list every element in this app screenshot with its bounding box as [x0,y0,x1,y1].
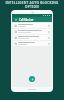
staticText: INTELLIGENT AUTO BLOCKING OPTION [0,1,64,9]
button[interactable]: Options [47,24,50,27]
button[interactable]: Options [47,36,50,39]
button[interactable]: Options [47,42,50,45]
button[interactable]: Options [47,30,50,33]
staticText: Call Blocker [19,18,34,22]
button[interactable]: Options [13,41,51,46]
button[interactable]: Options [13,35,51,40]
button[interactable]: Menu [14,18,18,22]
button[interactable]: Options [13,29,51,34]
button[interactable]: Add block rule [29,76,35,82]
button[interactable]: Options [13,23,51,28]
